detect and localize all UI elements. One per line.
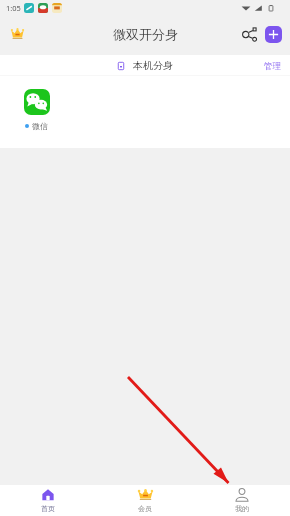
button[interactable]: 本机分身 — [117, 59, 173, 72]
button[interactable]: Add — [265, 26, 282, 43]
staticText: 本机分身 — [133, 59, 173, 72]
staticText: 管理 — [264, 61, 281, 72]
staticText: 微双开分身 — [113, 26, 178, 42]
staticText: 微信 — [32, 121, 48, 131]
staticText: 首页 — [41, 504, 55, 513]
staticText: 1:05 — [6, 3, 21, 13]
button[interactable]: 管理 — [255, 55, 290, 76]
button[interactable]: 我的 — [193, 485, 290, 516]
staticText: 我的 — [235, 504, 249, 513]
button[interactable]: 会员 — [96, 485, 193, 516]
button[interactable]: VIP — [4, 23, 30, 49]
button[interactable]: 微信 — [14, 89, 59, 131]
button[interactable]: Share — [239, 24, 259, 44]
button[interactable]: 首页 — [0, 485, 96, 516]
staticText: 会员 — [138, 504, 152, 513]
